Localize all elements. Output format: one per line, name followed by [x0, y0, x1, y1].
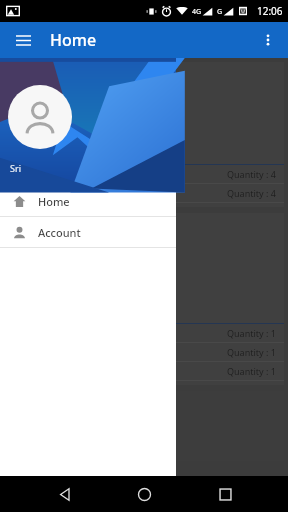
staticText: G: [217, 7, 223, 17]
staticText: Quantity : 4: [227, 187, 276, 199]
button[interactable]: DETAILS: [4, 62, 284, 207]
button[interactable]: Recent apps: [208, 477, 242, 511]
staticText: Quantity : 1: [227, 346, 276, 358]
staticText: Quantity : 1: [227, 365, 276, 377]
button[interactable]: More options: [254, 26, 282, 54]
button[interactable]: DETAILS: [6, 76, 112, 112]
staticText: Quantity : 4: [227, 168, 276, 180]
staticText: Home: [38, 194, 70, 209]
staticText: DETAILS: [40, 87, 79, 101]
staticText: Sri: [10, 162, 21, 174]
staticText: 12:06: [257, 4, 283, 18]
button[interactable]: DETAILS: [6, 223, 112, 259]
button[interactable]: Back: [47, 477, 81, 511]
button[interactable]: DETAILS: [4, 213, 284, 385]
button[interactable]: Account: [0, 217, 176, 247]
button[interactable]: Profile picture: [8, 85, 72, 149]
button[interactable]: Home: [127, 477, 161, 511]
staticText: 4G: [192, 7, 202, 17]
button[interactable]: Home: [0, 186, 176, 216]
staticText: Account: [38, 225, 81, 240]
staticText: Quantity : 1: [227, 327, 276, 339]
button[interactable]: Open navigation drawer: [10, 27, 36, 53]
staticText: Home: [50, 29, 97, 51]
staticText: DETAILS: [40, 234, 79, 248]
